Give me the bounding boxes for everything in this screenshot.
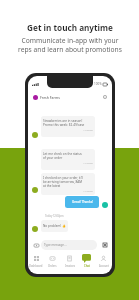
staticText: Dashboard — [29, 264, 43, 268]
button[interactable]: Type message... — [44, 240, 94, 250]
staticText: 11:40am — [43, 161, 93, 164]
staticText: Communicate in-app with your reps and le… — [18, 36, 122, 54]
staticText: Account — [99, 264, 109, 268]
staticText: Strawberries are in season! — [43, 119, 83, 123]
staticText: at the latest — [43, 184, 61, 188]
staticText: Today 12:04pm — [45, 214, 64, 218]
staticText: Orders — [48, 264, 57, 268]
staticText: Let me check on the status — [43, 152, 82, 156]
button[interactable]: I checked on your order, it'll — [43, 176, 93, 195]
button[interactable]: Invoices — [61, 254, 78, 268]
button[interactable]: No problem! 👍 — [43, 220, 66, 232]
button[interactable]: Camera — [33, 242, 39, 248]
button[interactable]: Attach — [102, 242, 108, 248]
staticText: 100% — [94, 82, 102, 86]
staticText: of your order — [43, 156, 63, 160]
staticText: Type message... — [44, 243, 67, 247]
button[interactable]: Dashboard — [28, 254, 44, 268]
staticText: Chat — [84, 264, 90, 268]
button[interactable]: Let me check on the status — [43, 152, 93, 170]
staticText: be arriving tomorrow, 8AM — [43, 180, 83, 184]
staticText: Fresh Farms — [40, 95, 60, 100]
button[interactable]: Chat — [78, 254, 95, 268]
button[interactable]: Great! Thanks! — [65, 196, 99, 208]
button[interactable]: Strawberries are in season! — [43, 119, 93, 137]
staticText: 11:02am — [43, 128, 93, 131]
button[interactable]: Call — [102, 94, 108, 100]
staticText: 11:48am — [43, 189, 93, 192]
staticText: Great! Thanks! — [72, 200, 93, 204]
staticText: Invoices — [65, 264, 75, 268]
staticText: No problem! 👍 — [43, 224, 66, 228]
button[interactable]: Account — [95, 254, 112, 268]
staticText: Promo this week: $2.49/case — [43, 123, 85, 127]
button[interactable]: Orders — [44, 254, 61, 268]
staticText: I checked on your order, it'll — [43, 176, 84, 180]
staticText: Get in touch anytime — [27, 22, 113, 33]
